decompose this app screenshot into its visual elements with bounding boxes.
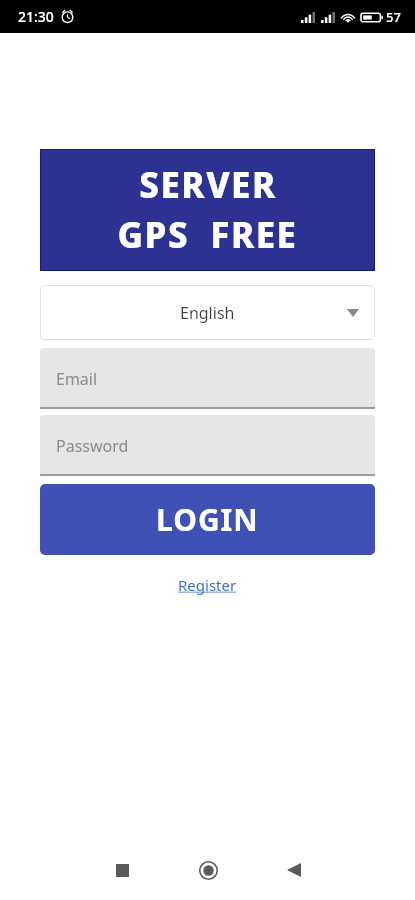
button[interactable]: Back xyxy=(264,840,324,900)
staticText: English xyxy=(180,302,235,324)
button[interactable]: LOGIN xyxy=(40,484,375,555)
staticText: GPS FREE xyxy=(117,211,298,259)
staticText: Register xyxy=(178,575,237,595)
staticText: 57 xyxy=(386,8,401,26)
button[interactable]: Register xyxy=(170,573,245,597)
staticText: LOGIN xyxy=(156,499,259,540)
button[interactable]: Recents xyxy=(92,840,152,900)
button[interactable]: Email xyxy=(40,348,375,409)
staticText: Password xyxy=(56,435,129,457)
staticText: SERVER xyxy=(139,161,277,209)
button[interactable]: Password xyxy=(40,415,375,476)
staticText: Email xyxy=(56,368,98,390)
staticText: 21:30 xyxy=(18,7,54,26)
button[interactable]: Home xyxy=(178,840,238,900)
button[interactable]: English xyxy=(40,285,375,340)
